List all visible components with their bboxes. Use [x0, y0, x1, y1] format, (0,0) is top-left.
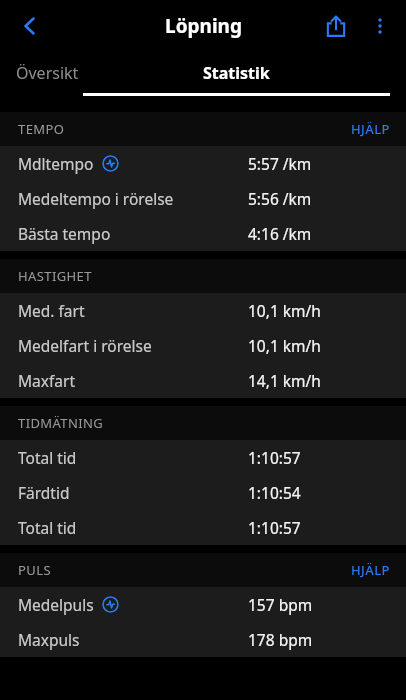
staticText: 10,1 km/h	[248, 300, 321, 321]
button[interactable]: Back	[8, 4, 52, 48]
button[interactable]: Maxpuls	[0, 622, 406, 657]
button[interactable]: Medeltempo i rörelse	[0, 181, 406, 216]
button[interactable]: Medelfart i rörelse	[0, 328, 406, 363]
button[interactable]: Info	[102, 596, 119, 613]
staticText: 14,1 km/h	[248, 370, 321, 391]
button[interactable]: Bästa tempo	[0, 216, 406, 251]
button[interactable]: Statistik	[81, 52, 392, 96]
staticText: 4:16 /km	[248, 223, 312, 244]
staticText: 5:57 /km	[248, 153, 312, 174]
button[interactable]: Info	[102, 155, 119, 172]
staticText: 5:56 /km	[248, 188, 312, 209]
staticText: Mdltempo	[18, 153, 94, 174]
button[interactable]: Total tid	[0, 510, 406, 545]
staticText: Översikt	[16, 62, 79, 84]
button[interactable]: HJÄLP	[335, 114, 406, 144]
button[interactable]: Medelpuls	[0, 587, 406, 622]
staticText: HJÄLP	[351, 561, 390, 579]
staticText: 1:10:57	[248, 517, 301, 538]
button[interactable]: Maxfart	[0, 363, 406, 398]
staticText: Maxpuls	[18, 629, 80, 650]
button[interactable]: More options	[358, 4, 402, 48]
staticText: TEMPO	[18, 120, 65, 138]
button[interactable]: Total tid	[0, 440, 406, 475]
staticText: 10,1 km/h	[248, 335, 321, 356]
staticText: Maxfart	[18, 370, 75, 391]
staticText: Total tid	[18, 517, 77, 538]
staticText: HJÄLP	[351, 120, 390, 138]
button[interactable]: HJÄLP	[335, 555, 406, 585]
button[interactable]: Färdtid	[0, 475, 406, 510]
staticText: Medeltempo i rörelse	[18, 188, 174, 209]
button[interactable]: Share	[314, 4, 358, 48]
staticText: Statistik	[203, 62, 270, 84]
staticText: Med. fart	[18, 300, 85, 321]
staticText: Färdtid	[18, 482, 70, 503]
staticText: Löpning	[165, 13, 242, 39]
staticText: Medelpuls	[18, 594, 94, 615]
staticText: PULS	[18, 561, 51, 579]
button[interactable]: Mdltempo	[0, 146, 406, 181]
staticText: 178 bpm	[248, 629, 313, 650]
staticText: Total tid	[18, 447, 77, 468]
staticText: HASTIGHET	[18, 267, 92, 285]
staticText: TIDMÄTNING	[18, 414, 104, 432]
button[interactable]: Översikt	[14, 52, 81, 93]
staticText: 1:10:54	[248, 482, 301, 503]
staticText: 1:10:57	[248, 447, 301, 468]
staticText: 157 bpm	[248, 594, 313, 615]
button[interactable]: Med. fart	[0, 293, 406, 328]
staticText: Bästa tempo	[18, 223, 111, 244]
staticText: Medelfart i rörelse	[18, 335, 152, 356]
